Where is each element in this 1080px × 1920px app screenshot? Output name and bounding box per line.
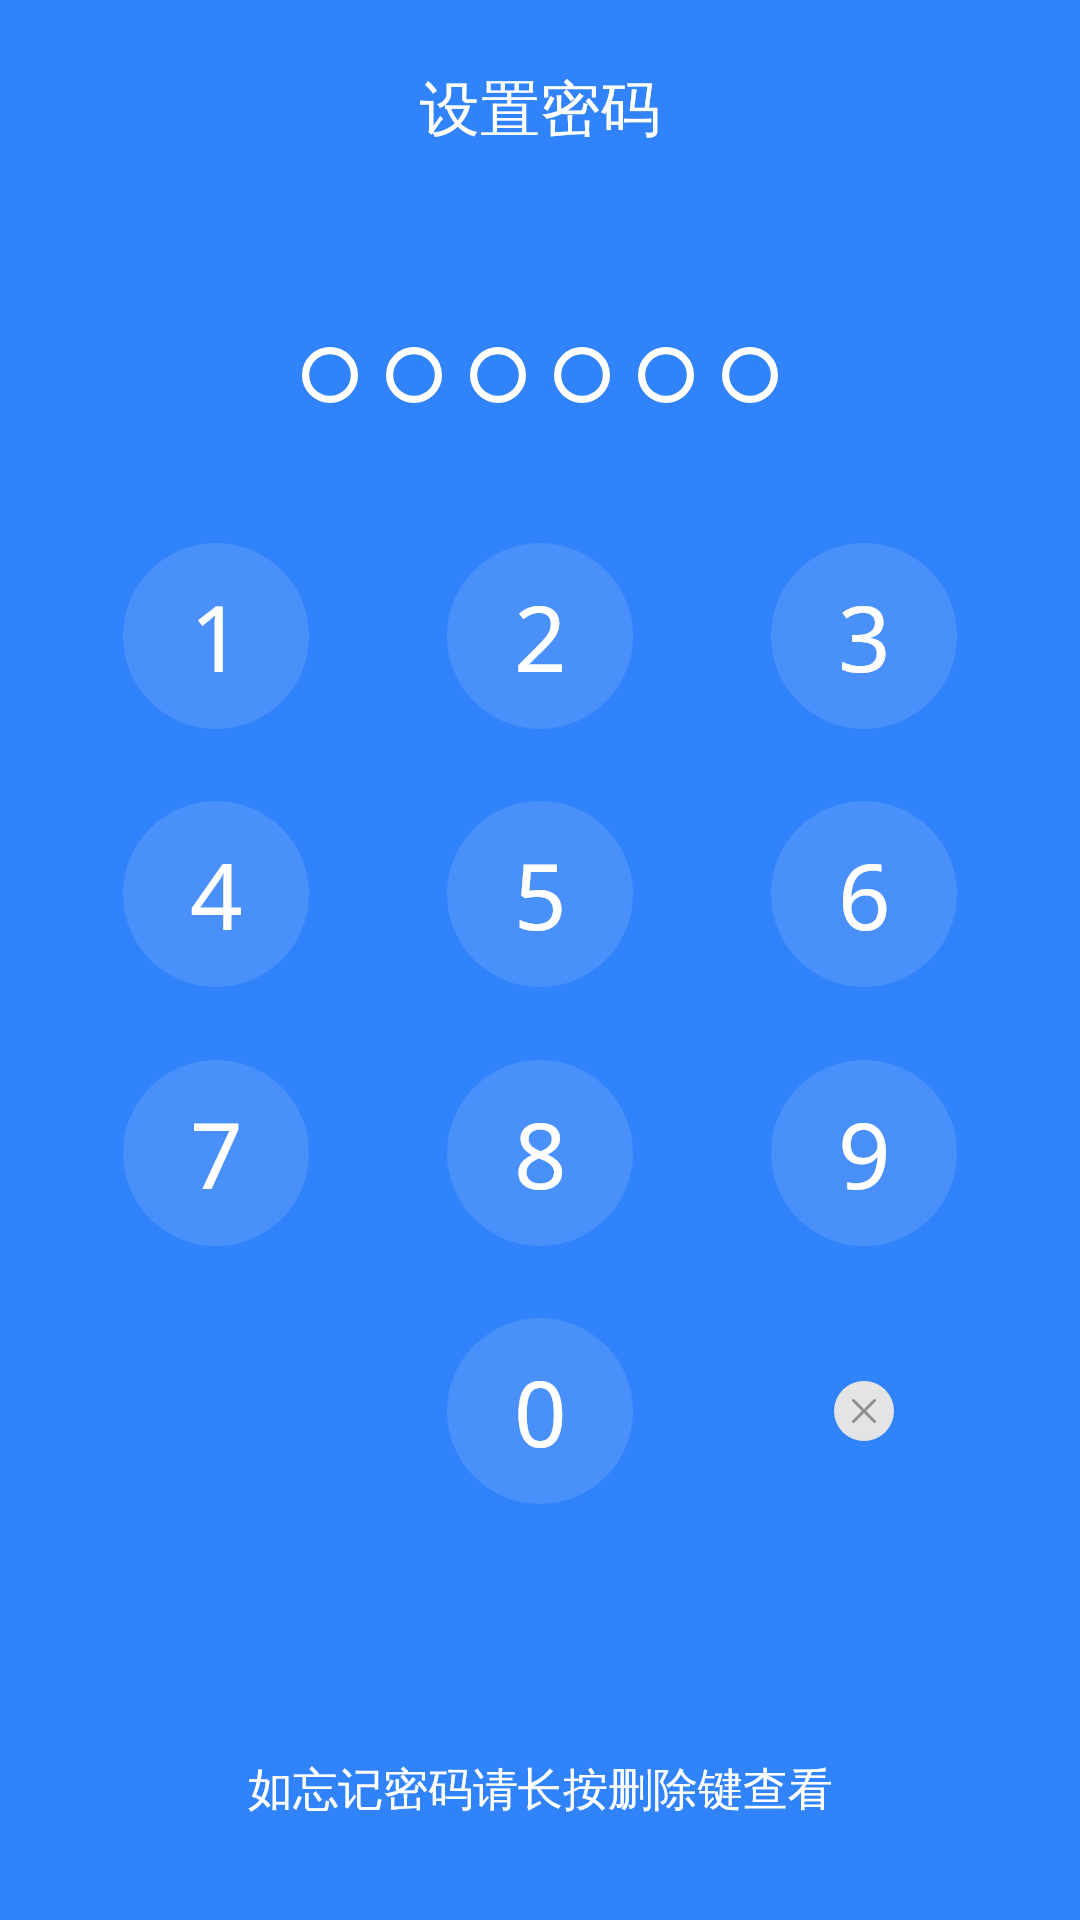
staticText: 5 bbox=[514, 832, 567, 957]
staticText: 3 bbox=[838, 574, 891, 699]
staticText: 设置密码 bbox=[420, 72, 660, 148]
button[interactable]: 5 bbox=[447, 801, 633, 987]
staticText: 如忘记密码请长按删除键查看 bbox=[248, 1762, 833, 1819]
staticText: 8 bbox=[514, 1091, 567, 1216]
staticText: 9 bbox=[838, 1091, 891, 1216]
button[interactable]: 8 bbox=[447, 1060, 633, 1246]
button[interactable]: 3 bbox=[771, 543, 957, 729]
staticText: 4 bbox=[190, 832, 243, 957]
staticText: 0 bbox=[514, 1349, 567, 1474]
button[interactable]: 0 bbox=[447, 1318, 633, 1504]
button[interactable]: 2 bbox=[447, 543, 633, 729]
button[interactable]: 1 bbox=[123, 543, 309, 729]
staticText: 7 bbox=[190, 1091, 243, 1216]
button[interactable]: 6 bbox=[771, 801, 957, 987]
button[interactable]: 7 bbox=[123, 1060, 309, 1246]
button[interactable]: Delete bbox=[834, 1381, 894, 1441]
staticText: 6 bbox=[838, 832, 891, 957]
staticText: 1 bbox=[190, 574, 243, 699]
button[interactable]: 4 bbox=[123, 801, 309, 987]
button[interactable]: 9 bbox=[771, 1060, 957, 1246]
staticText: 2 bbox=[514, 574, 567, 699]
